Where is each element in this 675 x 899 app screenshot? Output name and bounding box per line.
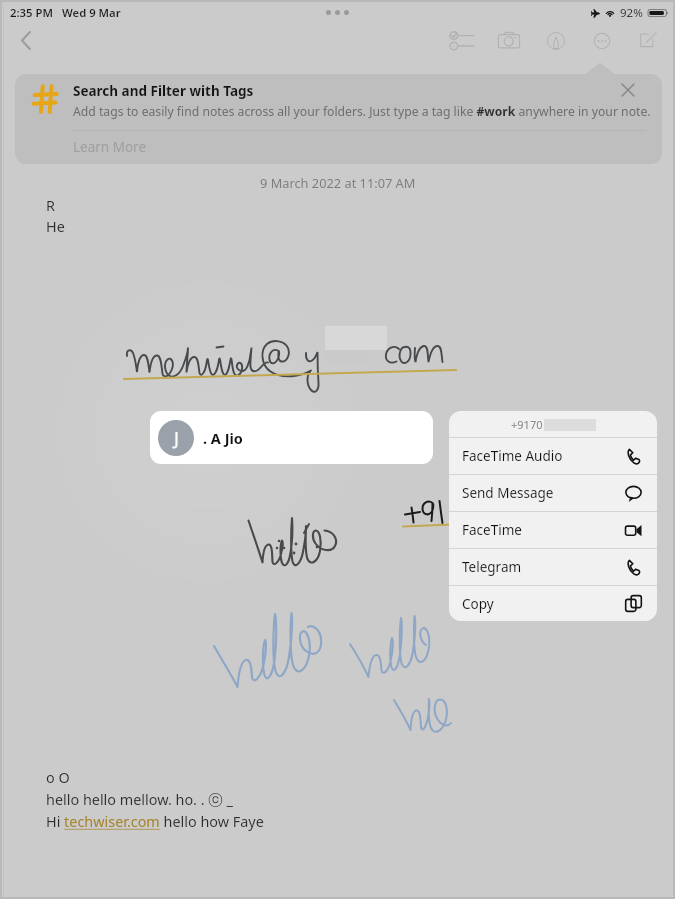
staticText: . A Jio [203, 428, 243, 448]
staticText: He [46, 217, 65, 237]
button[interactable]: Dismiss [615, 77, 641, 103]
staticText: Search and Filter with Tags [73, 82, 254, 100]
staticText: Learn More [73, 138, 147, 156]
staticText: hello hello mellow. ho. . ⓒ _ [46, 790, 233, 810]
staticText: Send Message [462, 484, 554, 502]
button[interactable]: Camera [491, 25, 527, 56]
button[interactable]: FaceTime [449, 512, 657, 548]
button[interactable]: Compose [633, 25, 664, 56]
staticText: J [174, 426, 179, 451]
staticText: Hi techwiser.com hello how Faye [46, 812, 264, 832]
button[interactable]: Telegram [449, 549, 657, 585]
button[interactable]: Search and Filter with Tags [15, 74, 662, 164]
button[interactable]: More options [586, 25, 618, 57]
staticText: 9 March 2022 at 11:07 AM [260, 174, 416, 191]
staticText: o O [46, 768, 70, 788]
button[interactable]: Send Message [449, 475, 657, 511]
staticText: Wed 9 Mar [62, 5, 121, 20]
staticText: FaceTime [462, 521, 522, 539]
staticText: FaceTime Audio [462, 447, 563, 465]
button[interactable]: Copy [449, 586, 657, 621]
staticText: Telegram [462, 558, 522, 576]
button[interactable]: J [150, 411, 433, 464]
staticText: 92% [620, 5, 643, 21]
button[interactable]: Markup [540, 25, 572, 57]
button[interactable]: Back [10, 24, 42, 56]
staticText: +9170 [511, 417, 543, 432]
button[interactable]: Checklist [443, 25, 481, 57]
staticText: Copy [462, 595, 494, 613]
staticText: R [46, 196, 55, 216]
staticText: Add tags to easily find notes across all… [73, 103, 651, 120]
staticText: 2:35 PM [10, 5, 53, 20]
button[interactable]: FaceTime Audio [449, 438, 657, 474]
